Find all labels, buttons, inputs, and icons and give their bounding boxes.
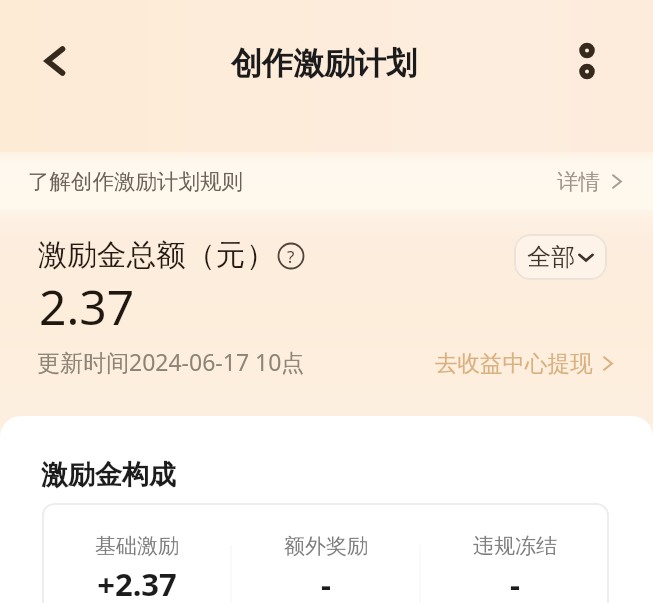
button[interactable]: 了解创作激励计划规则 [0, 153, 653, 210]
staticText: 创作激励计划 [231, 44, 417, 83]
button[interactable]: More options [565, 39, 609, 83]
staticText: - [510, 563, 520, 603]
button[interactable]: Help [278, 243, 304, 269]
staticText: 详情 [557, 168, 600, 195]
button[interactable]: 全部 [514, 234, 607, 280]
staticText: ） [246, 237, 272, 274]
staticText: 去收益中心提现 [435, 349, 593, 377]
staticText: 元 [216, 237, 246, 274]
staticText: 额外奖励 [284, 533, 368, 559]
staticText: 违规冻结 [473, 533, 557, 559]
staticText: （ [186, 237, 216, 274]
button[interactable]: 去收益中心提现 [435, 349, 617, 377]
staticText: ? [287, 245, 295, 268]
staticText: 基础激励 [95, 533, 179, 559]
button[interactable]: Back [30, 39, 74, 83]
staticText: 2.37 [39, 274, 135, 339]
staticText: 更新时间2024-06-17 10点 [37, 346, 305, 377]
staticText: 激励金总额 [38, 237, 186, 274]
staticText: 激励金构成 [41, 458, 176, 492]
staticText: +2.37 [97, 563, 177, 603]
staticText: 了解创作激励计划规则 [28, 168, 243, 195]
staticText: 全部 [527, 242, 575, 272]
staticText: - [321, 563, 331, 603]
